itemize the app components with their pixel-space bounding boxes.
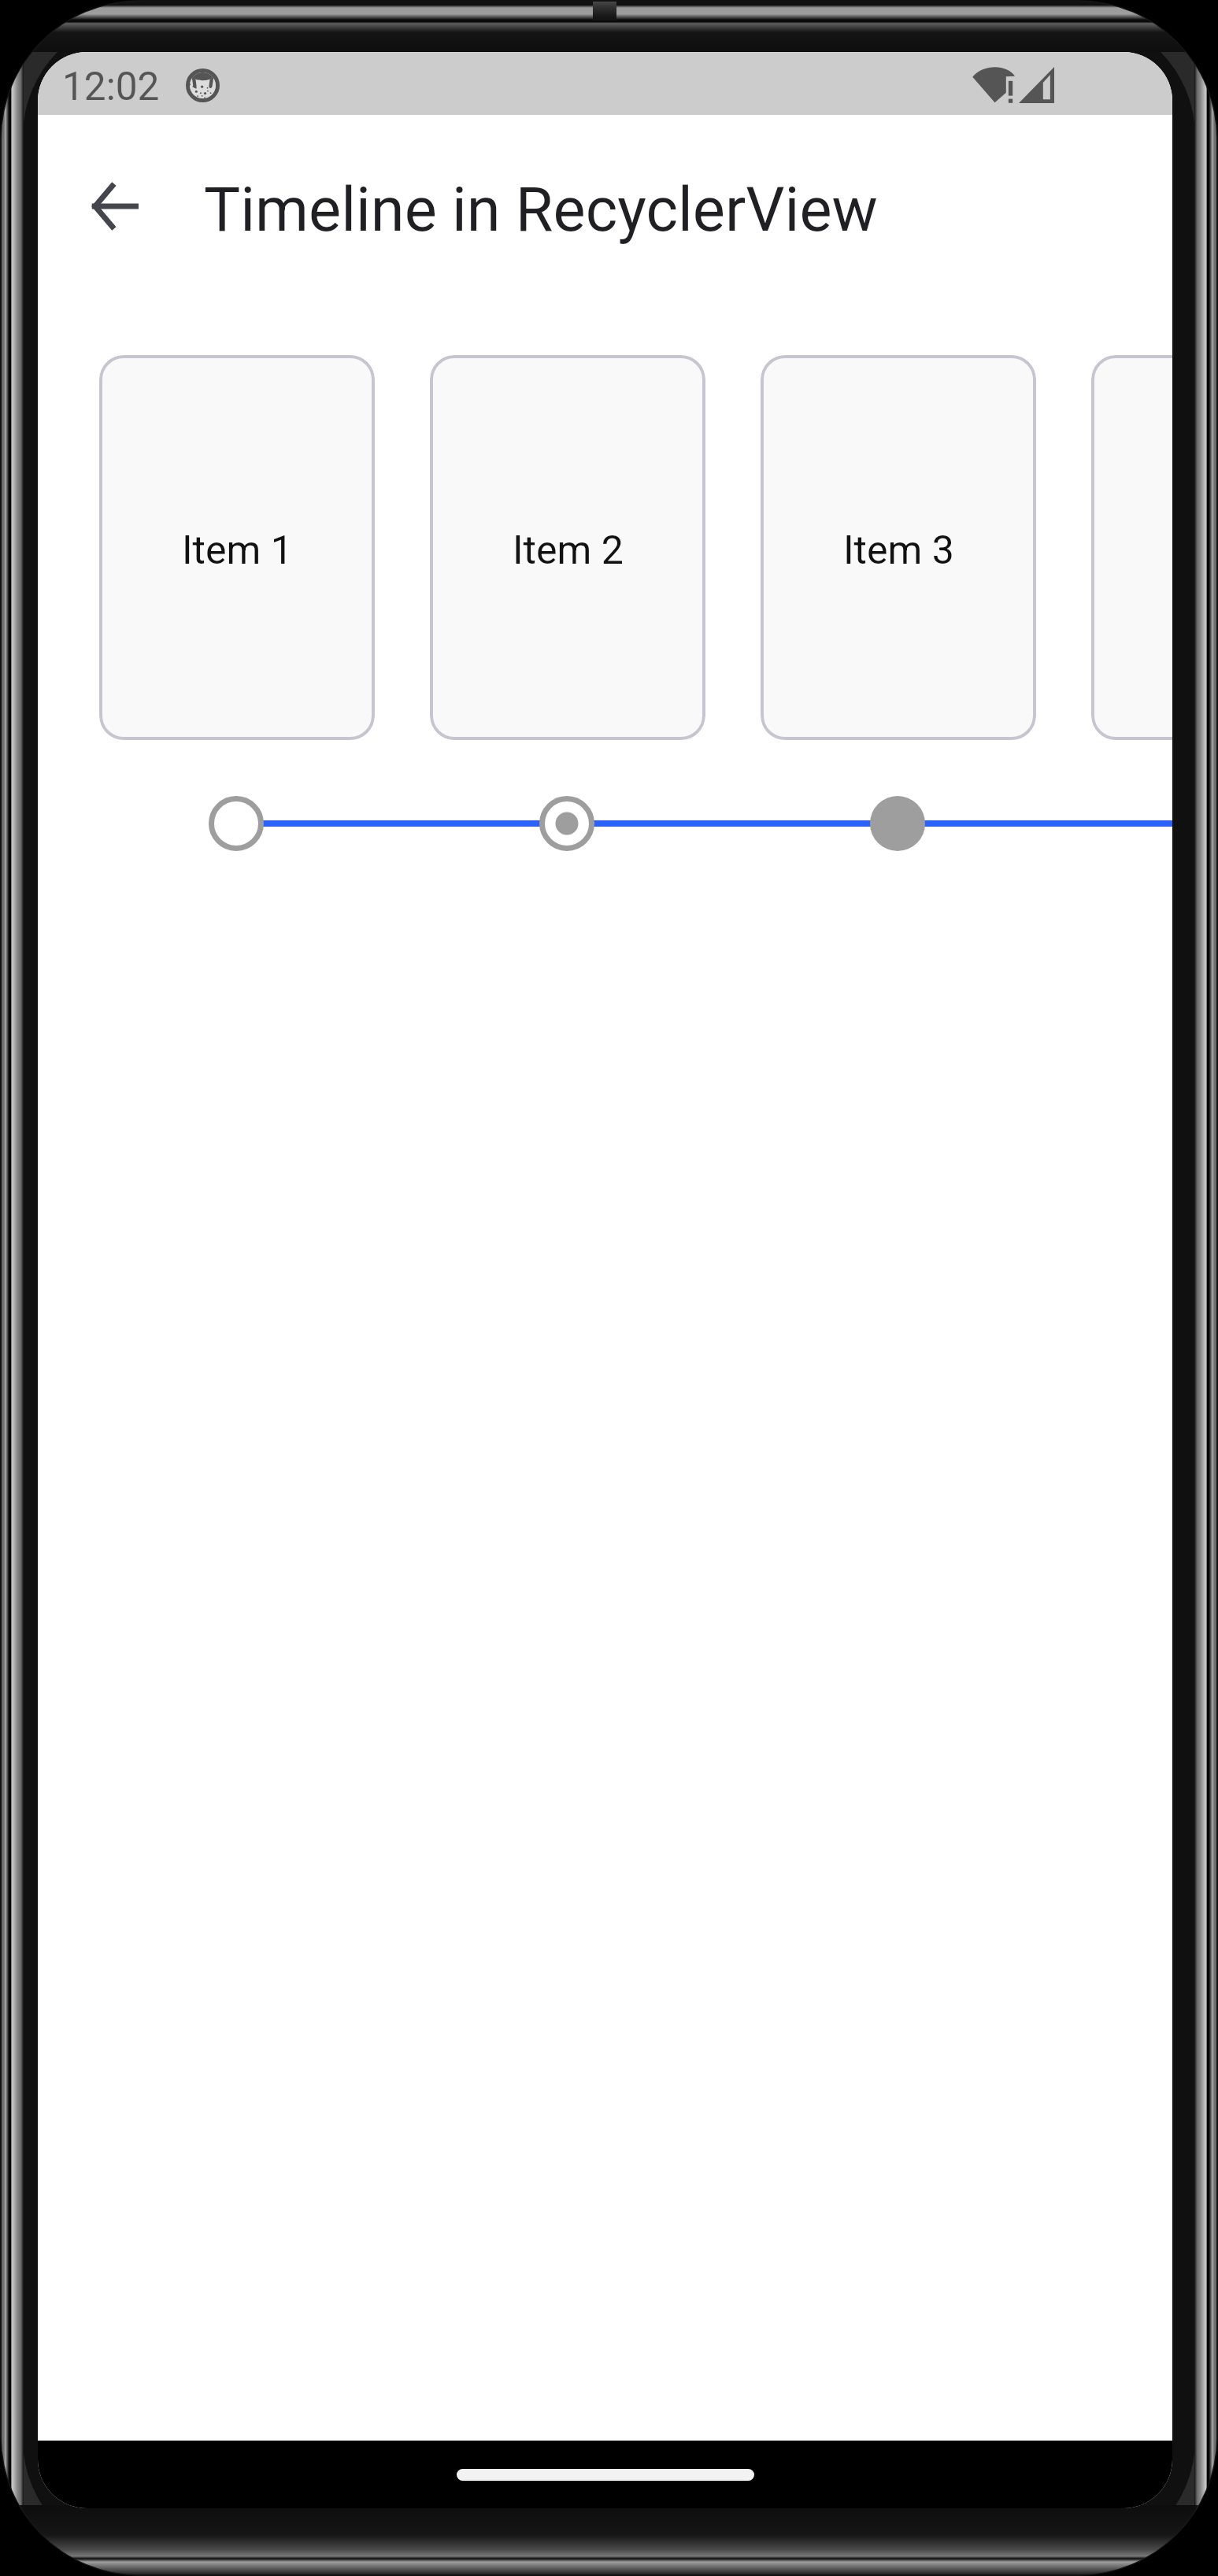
staticText: Timeline in RecyclerView — [204, 174, 878, 246]
button[interactable]: Step 2 — [539, 796, 594, 851]
staticText: Item 2 — [513, 527, 624, 574]
staticText: Item 3 — [843, 527, 954, 574]
button[interactable]: Step 3 — [870, 796, 925, 851]
button[interactable]: Navigate up — [71, 162, 159, 250]
button[interactable]: Step 1 — [209, 796, 264, 851]
button[interactable]: Item 4 — [1091, 355, 1172, 740]
button[interactable]: Item 3 — [761, 355, 1036, 740]
button[interactable]: Item 2 — [430, 355, 705, 740]
staticText: 12:02 — [62, 64, 160, 109]
button[interactable]: Item 1 — [99, 355, 375, 740]
staticText: Item 1 — [182, 527, 293, 574]
